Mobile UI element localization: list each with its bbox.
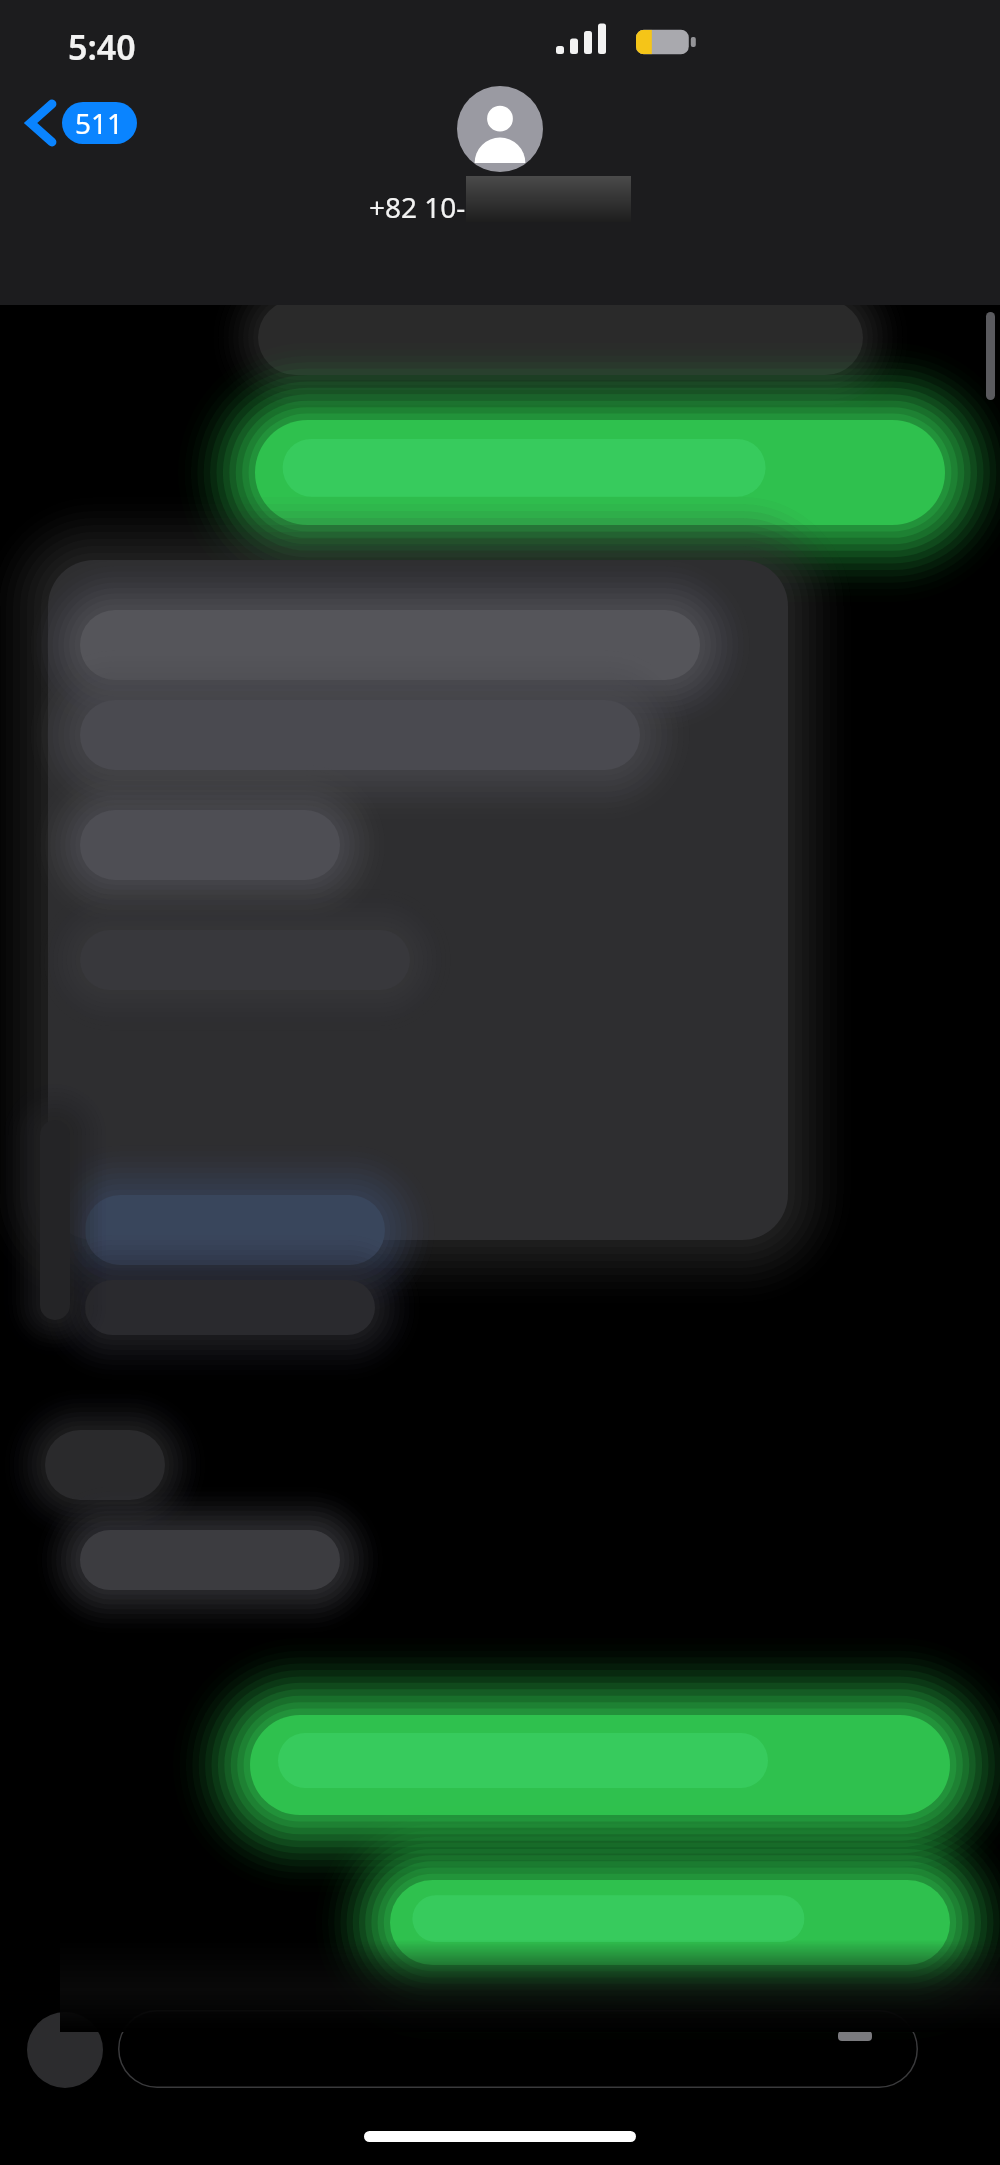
button[interactable]: 511 xyxy=(22,96,143,150)
staticText: 5:40 xyxy=(68,24,136,70)
button[interactable] xyxy=(118,2010,918,2088)
button[interactable]: Add attachment xyxy=(27,2012,103,2088)
button[interactable]: +82 10- xyxy=(369,86,631,230)
staticText: 511 xyxy=(75,104,124,142)
staticText: +82 10- xyxy=(369,188,466,226)
